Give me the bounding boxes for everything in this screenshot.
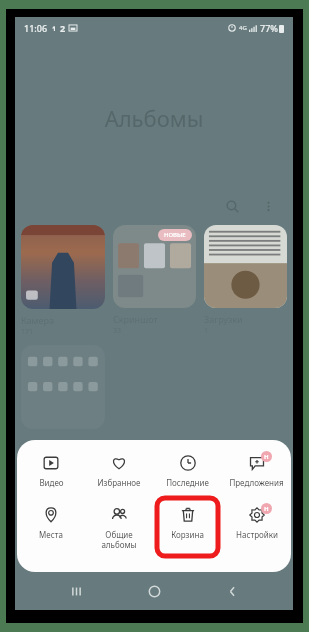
button[interactable]: Корзина <box>153 502 222 544</box>
staticText: 4G <box>239 24 247 32</box>
button[interactable]: Search <box>219 193 245 219</box>
button[interactable]: Последние <box>153 450 222 492</box>
button[interactable]: Места <box>17 502 85 544</box>
staticText: 2 <box>60 22 66 34</box>
button[interactable]: Загрузки <box>204 225 287 336</box>
staticText: Корзина <box>171 529 204 540</box>
staticText: Избранное <box>97 477 141 488</box>
button[interactable]: Избранное <box>85 450 153 492</box>
staticText: 11:06 <box>24 22 48 34</box>
staticText: Места <box>39 529 63 540</box>
staticText: Последние <box>166 477 209 488</box>
button[interactable]: Recent apps <box>59 574 93 608</box>
staticText: Камера <box>21 314 54 326</box>
button[interactable] <box>21 345 105 429</box>
staticText: Настройки <box>236 529 278 540</box>
button[interactable]: Home <box>137 574 171 608</box>
button[interactable]: Общие альбомы <box>85 502 153 554</box>
button[interactable]: H <box>222 502 291 544</box>
staticText: 77% <box>260 22 278 34</box>
button[interactable]: H <box>222 450 291 492</box>
button[interactable]: НОВЫЕ <box>113 225 196 336</box>
staticText: H <box>264 453 269 461</box>
button[interactable]: Back <box>215 574 249 608</box>
staticText: НОВЫЕ <box>164 231 186 239</box>
staticText: Видео <box>39 477 64 488</box>
staticText: Альбомы <box>15 103 293 133</box>
staticText: H <box>264 505 269 513</box>
staticText: Загрузки <box>204 313 243 325</box>
button[interactable]: Видео <box>17 450 85 492</box>
staticText: Скриншот <box>113 313 158 325</box>
staticText: Предложения <box>229 477 284 488</box>
button[interactable]: Камера <box>21 225 105 337</box>
staticText: Общие альбомы <box>101 529 137 550</box>
